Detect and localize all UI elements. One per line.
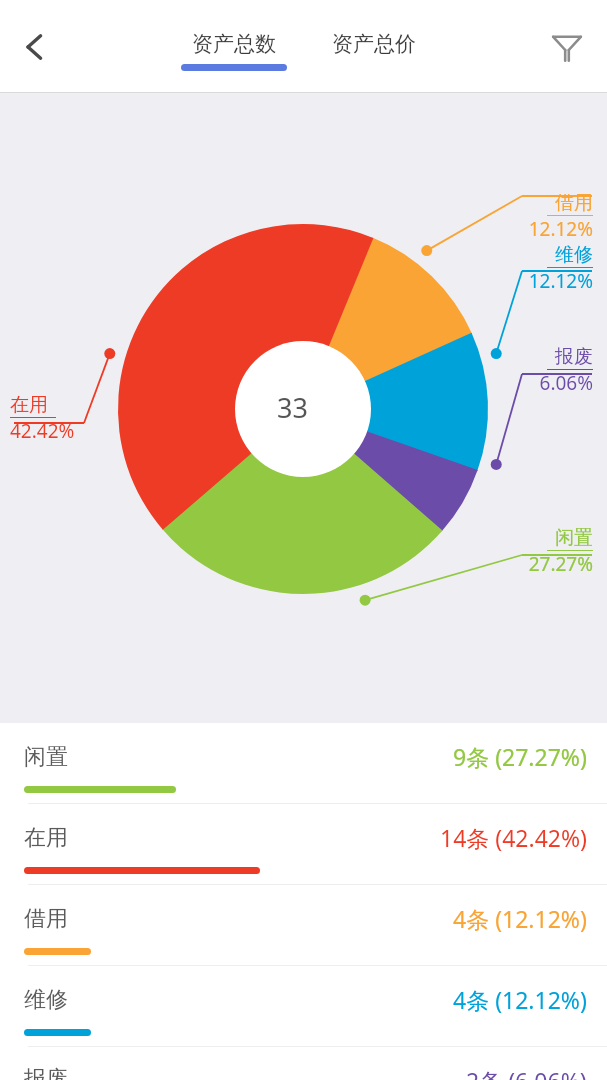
button[interactable]: Back xyxy=(6,18,64,76)
staticText: 借用 xyxy=(24,905,68,933)
button[interactable]: 资产总数 xyxy=(173,31,295,71)
staticText: 维修 xyxy=(24,986,68,1014)
button[interactable]: 在用 xyxy=(0,804,607,885)
staticText: 资产总数 xyxy=(192,31,276,57)
staticText: 资产总价 xyxy=(332,31,416,57)
staticText: 报废 xyxy=(555,345,593,369)
staticText: 2条 (6.06%) xyxy=(466,1065,587,1080)
staticText: 闲置 xyxy=(24,743,68,771)
staticText: 维修 xyxy=(555,243,593,267)
staticText: 4条 (12.12%) xyxy=(453,903,587,934)
button[interactable]: 闲置 xyxy=(0,723,607,804)
staticText: 12.12% xyxy=(528,216,593,242)
staticText: 借用 xyxy=(555,191,593,215)
staticText: 9条 (27.27%) xyxy=(453,741,587,772)
staticText: 42.42% xyxy=(10,418,75,444)
staticText: 6.06% xyxy=(539,370,593,396)
staticText: 在用 xyxy=(24,824,68,852)
button[interactable]: 维修 xyxy=(0,966,607,1047)
button[interactable]: 报废 xyxy=(0,1047,607,1080)
staticText: 12.12% xyxy=(528,268,593,294)
staticText: 33 xyxy=(277,389,308,426)
button[interactable]: 借用 xyxy=(0,885,607,966)
staticText: 14条 (42.42%) xyxy=(440,822,587,853)
button[interactable]: 资产总价 xyxy=(313,31,435,71)
staticText: 闲置 xyxy=(555,526,593,550)
button[interactable]: Filter xyxy=(539,19,595,75)
staticText: 4条 (12.12%) xyxy=(453,984,587,1015)
staticText: 报废 xyxy=(24,1065,68,1080)
staticText: 27.27% xyxy=(528,551,593,577)
staticText: 在用 xyxy=(10,393,48,417)
